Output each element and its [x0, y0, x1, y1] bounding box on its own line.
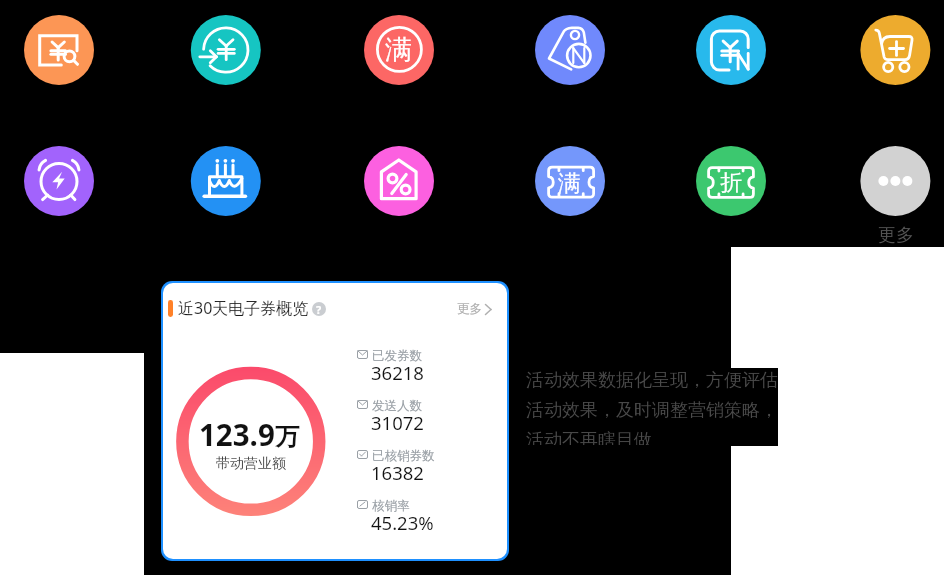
staticText: 折 [720, 169, 742, 197]
staticText: 满 [385, 33, 412, 67]
staticText: 已发券数 [372, 348, 422, 364]
staticText: 发送人数 [372, 398, 422, 414]
staticText: 更多 [878, 224, 914, 247]
staticText: 123.9 [199, 414, 275, 454]
staticText: 万 [275, 422, 299, 452]
staticText: 36218 [371, 360, 424, 385]
staticText: 16382 [371, 460, 424, 485]
staticText: 带动营业额 [163, 455, 339, 473]
staticText: 近30天电子券概览 [178, 297, 309, 319]
button[interactable]: 更多 [457, 301, 495, 317]
staticText: 31072 [371, 410, 424, 435]
staticText: ? [316, 302, 322, 316]
staticText: 更多 [457, 301, 482, 317]
staticText: 核销率 [372, 498, 410, 514]
button[interactable]: 近30天电子券概览 [163, 283, 507, 559]
staticText: 已核销券数 [372, 448, 435, 464]
staticText: 活动效果数据化呈现，方便评估活动效果，及时调整营销策略，活动不再瞎目做 [526, 369, 778, 445]
staticText: 45.23% [371, 510, 434, 535]
staticText: 满 [558, 169, 581, 198]
